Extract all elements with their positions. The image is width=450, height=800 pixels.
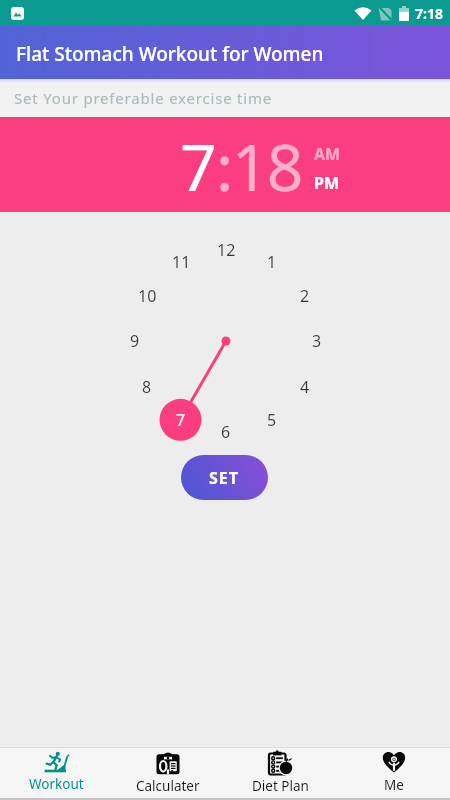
staticText: 4 (300, 376, 310, 398)
staticText: 6 (221, 421, 231, 443)
staticText: 2 (300, 285, 310, 307)
staticText: 9 (130, 330, 140, 352)
staticText: Diet Plan (252, 777, 309, 795)
staticText: 7 (180, 123, 216, 210)
staticText: SET (209, 467, 240, 489)
staticText: 8 (142, 376, 152, 398)
staticText: 11 (172, 251, 191, 273)
staticText: Flat Stomach Workout for Women (16, 41, 324, 67)
staticText: 5 (267, 409, 277, 431)
staticText: :18 (216, 123, 302, 210)
button[interactable]: Workout (0, 748, 112, 798)
staticText: 3 (312, 330, 322, 352)
button[interactable]: AM (314, 143, 341, 165)
staticText: Me (384, 776, 404, 794)
staticText: 1 (267, 251, 277, 273)
staticText: Workout (29, 775, 84, 793)
button[interactable]: Diet Plan (224, 748, 337, 798)
staticText: 12 (217, 239, 236, 261)
staticText: 10 (138, 285, 157, 307)
staticText: Set Your preferable exercise time (14, 88, 273, 108)
button[interactable]: SET (181, 455, 268, 500)
button[interactable]: Me (337, 748, 450, 798)
button[interactable]: Calculater (112, 748, 224, 798)
button[interactable]: PM (314, 172, 340, 194)
staticText: 7:18 (415, 4, 443, 23)
staticText: 7 (176, 409, 186, 431)
staticText: Calculater (136, 777, 200, 795)
